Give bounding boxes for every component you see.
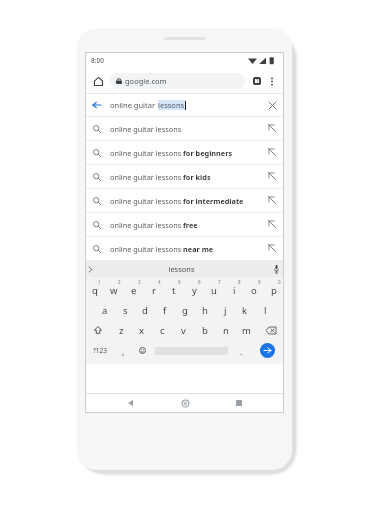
staticText: c xyxy=(160,324,165,337)
button[interactable]: r xyxy=(144,280,164,300)
staticText: u xyxy=(211,284,217,297)
button[interactable]: f xyxy=(155,300,175,320)
button[interactable]: Clear xyxy=(265,98,279,112)
button[interactable]: n xyxy=(215,320,236,340)
button[interactable]: Fill query xyxy=(266,194,279,207)
staticText: . xyxy=(240,345,243,357)
button[interactable]: Fill query xyxy=(266,146,279,159)
button[interactable]: y xyxy=(184,280,204,300)
staticText: g xyxy=(182,304,188,317)
button[interactable]: Fill query xyxy=(266,170,279,183)
button[interactable]: u xyxy=(204,280,224,300)
button[interactable]: Home xyxy=(175,393,195,413)
button[interactable]: s xyxy=(115,300,135,320)
button[interactable]: Fill query xyxy=(266,122,279,135)
staticText: s xyxy=(123,304,128,317)
button[interactable]: Back xyxy=(85,94,284,116)
button[interactable]: j xyxy=(215,300,235,320)
button[interactable]: v xyxy=(173,320,194,340)
button[interactable]: Shift xyxy=(85,320,111,340)
staticText: 3 xyxy=(138,279,141,285)
staticText: i xyxy=(233,284,236,297)
other: Back xyxy=(90,98,104,112)
button[interactable]: , xyxy=(115,340,132,361)
staticText: n xyxy=(223,324,229,337)
staticText: online guitar lessons for beginners xyxy=(110,148,233,158)
button[interactable]: Home xyxy=(90,73,106,89)
button[interactable]: google.com xyxy=(110,73,245,89)
staticText: k xyxy=(242,304,248,317)
staticText: online guitar lessons near me xyxy=(110,244,214,254)
staticText: 0 xyxy=(278,279,281,285)
staticText: f xyxy=(163,304,167,317)
staticText: w xyxy=(110,284,118,297)
button[interactable]: . xyxy=(231,340,251,361)
button[interactable]: l xyxy=(255,300,275,320)
button[interactable]: p xyxy=(264,280,284,300)
button[interactable]: d xyxy=(135,300,155,320)
button[interactable]: a xyxy=(94,300,115,320)
button[interactable]: Voice input xyxy=(268,261,284,277)
staticText: z xyxy=(119,324,124,337)
staticText: d xyxy=(142,304,148,317)
button[interactable]: online guitar lessons for intermediate xyxy=(85,189,284,212)
staticText: m xyxy=(242,324,251,337)
button[interactable]: online guitar lessons free xyxy=(85,213,284,236)
staticText: , xyxy=(122,345,125,357)
staticText: l xyxy=(264,304,267,317)
button[interactable]: Back xyxy=(120,393,140,413)
button[interactable]: online guitar lessons for kids xyxy=(85,165,284,188)
staticText: google.com xyxy=(125,76,167,86)
button[interactable]: w xyxy=(104,280,124,300)
staticText: online guitar lessons for kids xyxy=(110,172,211,182)
button[interactable]: ?123 xyxy=(85,340,115,361)
button[interactable]: Space xyxy=(152,340,231,361)
staticText: t xyxy=(172,284,176,297)
button[interactable]: Recent apps xyxy=(229,393,249,413)
button[interactable]: i xyxy=(224,280,244,300)
staticText: lessons xyxy=(95,264,268,274)
staticText: x xyxy=(139,324,145,337)
button[interactable]: online guitar lessons for beginners xyxy=(85,141,284,164)
staticText: r xyxy=(152,284,156,297)
button[interactable]: Tabs xyxy=(249,73,265,89)
button[interactable]: t xyxy=(164,280,184,300)
staticText: p xyxy=(271,284,277,297)
staticText: q xyxy=(92,284,98,297)
button[interactable]: online guitar lessons near me xyxy=(85,237,284,260)
button[interactable]: g xyxy=(175,300,195,320)
button[interactable]: x xyxy=(131,320,152,340)
button[interactable]: e xyxy=(124,280,144,300)
staticText: ?123 xyxy=(93,346,107,355)
button[interactable]: c xyxy=(152,320,173,340)
staticText: 6 xyxy=(198,279,201,285)
button[interactable]: o xyxy=(244,280,264,300)
staticText: e xyxy=(131,284,137,297)
staticText: 8:00 xyxy=(91,56,104,65)
button[interactable]: h xyxy=(195,300,215,320)
button[interactable]: More options xyxy=(265,74,279,88)
button[interactable]: Backspace xyxy=(257,320,284,340)
button[interactable]: Search xyxy=(251,340,284,361)
staticText: lessons xyxy=(158,100,185,110)
staticText: online guitar lessons free xyxy=(110,220,198,230)
button[interactable]: Fill query xyxy=(266,218,279,231)
button[interactable]: q xyxy=(85,280,104,300)
staticText: 5 xyxy=(178,279,181,285)
staticText: online guitar lessons xyxy=(110,124,182,134)
staticText: 1 xyxy=(98,279,101,285)
staticText: online guitar lessons for intermediate xyxy=(110,196,244,206)
button[interactable]: Emoji xyxy=(132,340,152,361)
staticText: o xyxy=(251,284,257,297)
button[interactable]: b xyxy=(194,320,215,340)
button[interactable]: Expand xyxy=(85,261,95,277)
button[interactable]: k xyxy=(235,300,255,320)
button[interactable]: online guitar lessons xyxy=(85,117,284,140)
staticText: 9 xyxy=(258,279,261,285)
button[interactable]: z xyxy=(111,320,131,340)
staticText: 2 xyxy=(118,279,121,285)
staticText: j xyxy=(224,304,227,317)
button[interactable]: Fill query xyxy=(266,242,279,255)
button[interactable]: m xyxy=(236,320,257,340)
staticText: y xyxy=(192,284,197,297)
